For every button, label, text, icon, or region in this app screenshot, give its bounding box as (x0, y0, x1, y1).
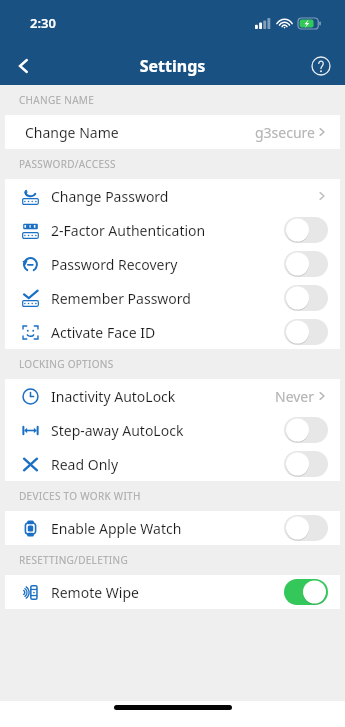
button[interactable]: Off (284, 451, 328, 477)
staticText: DEVICES TO WORK WITH (19, 489, 141, 503)
staticText: PASSWORD/ACCESS (19, 157, 116, 171)
staticText: Settings (48, 55, 297, 77)
staticText: CHANGE NAME (19, 93, 95, 107)
staticText: LOCKING OPTIONS (19, 357, 114, 371)
button[interactable]: Inactivity AutoLock (5, 379, 340, 413)
staticText: 2:30 (30, 14, 56, 32)
button[interactable]: Activate Face ID (5, 315, 340, 349)
staticText: Read Only (51, 455, 284, 474)
staticText: Enable Apple Watch (51, 519, 284, 538)
button[interactable]: On (284, 579, 328, 605)
staticText: 2-Factor Authentication (51, 221, 284, 240)
button[interactable]: Off (284, 217, 328, 243)
button[interactable]: Off (284, 319, 328, 345)
button[interactable]: Step-away AutoLock (5, 413, 340, 447)
button[interactable]: Off (284, 417, 328, 443)
staticText: RESETTING/DELETING (19, 553, 129, 567)
staticText: Never (275, 387, 315, 406)
button[interactable]: Off (284, 251, 328, 277)
button[interactable]: Enable Apple Watch (5, 511, 340, 545)
button[interactable]: Password Recovery (5, 247, 340, 281)
staticText: Password Recovery (51, 255, 284, 274)
staticText: Remote Wipe (51, 583, 284, 602)
button[interactable]: Back (0, 46, 48, 85)
button[interactable]: 2-Factor Authentication (5, 213, 340, 247)
staticText: Change Name (25, 123, 255, 142)
button[interactable]: Remember Password (5, 281, 340, 315)
staticText: g3secure (255, 123, 315, 142)
button[interactable]: Read Only (5, 447, 340, 481)
button[interactable]: Change Password (5, 179, 340, 213)
staticText: Remember Password (51, 289, 284, 308)
button[interactable]: Change Name (5, 115, 340, 149)
button[interactable]: Help (297, 46, 345, 85)
staticText: Activate Face ID (51, 323, 284, 342)
staticText: Change Password (51, 187, 316, 206)
button[interactable]: Remote Wipe (5, 575, 340, 609)
button[interactable]: Off (284, 285, 328, 311)
staticText: Step-away AutoLock (51, 421, 284, 440)
button[interactable]: Off (284, 515, 328, 541)
staticText: Inactivity AutoLock (51, 387, 275, 406)
